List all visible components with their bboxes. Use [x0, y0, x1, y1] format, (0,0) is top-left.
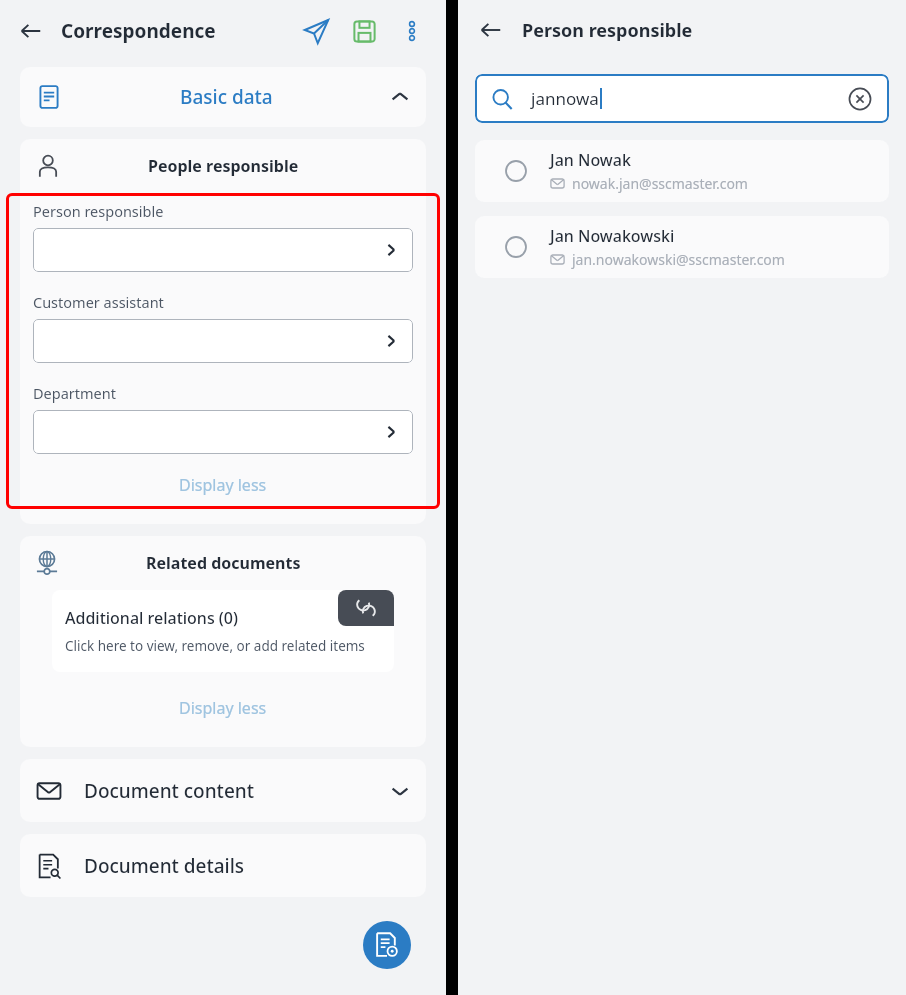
button[interactable]: Customer assistant — [33, 319, 413, 363]
button[interactable]: Department — [33, 410, 413, 454]
staticText: Click here to view, remove, or add relat… — [65, 637, 365, 655]
staticText: Jan Nowakowski — [550, 225, 675, 247]
staticText: Jan Nowak — [550, 149, 631, 171]
button[interactable]: More options — [392, 11, 432, 51]
button[interactable]: jannowa — [475, 74, 889, 123]
button[interactable]: Document details — [20, 834, 426, 897]
button[interactable]: Basic data — [20, 67, 426, 127]
button[interactable]: Jan Nowak — [475, 140, 889, 202]
staticText: Person responsible — [33, 201, 164, 221]
button[interactable]: People responsible — [36, 139, 410, 193]
button[interactable]: Person responsible — [33, 228, 413, 272]
button[interactable]: Relations — [338, 590, 394, 626]
staticText: Additional relations (0) — [65, 607, 238, 629]
button[interactable]: Back — [14, 14, 48, 48]
staticText: Display less — [179, 474, 267, 496]
button[interactable]: Back — [474, 13, 508, 47]
staticText: People responsible — [148, 155, 299, 177]
staticText: Document details — [84, 853, 245, 879]
button[interactable]: Related documents — [33, 536, 413, 590]
staticText: nowak.jan@sscmaster.com — [572, 174, 748, 193]
button[interactable]: Send — [296, 11, 336, 51]
staticText: Display less — [179, 697, 267, 719]
staticText: Document content — [84, 778, 254, 804]
staticText: Correspondence — [61, 18, 216, 44]
staticText: Customer assistant — [33, 292, 164, 312]
staticText: jan.nowakowski@sscmaster.com — [572, 250, 785, 269]
staticText: jannowa — [531, 87, 599, 110]
button[interactable]: Additional relations (0) — [52, 590, 394, 672]
button[interactable]: Jan Nowakowski — [475, 216, 889, 278]
button[interactable]: Display less — [20, 474, 426, 496]
button[interactable]: Clear — [847, 86, 873, 112]
button[interactable]: Document preview — [363, 921, 411, 969]
staticText: Related documents — [146, 552, 301, 574]
button[interactable]: Document content — [20, 759, 426, 822]
staticText: Basic data — [180, 84, 273, 110]
button[interactable]: Save — [344, 11, 384, 51]
staticText: Department — [33, 383, 116, 403]
button[interactable]: Display less — [20, 697, 426, 719]
staticText: Person responsible — [522, 18, 693, 43]
